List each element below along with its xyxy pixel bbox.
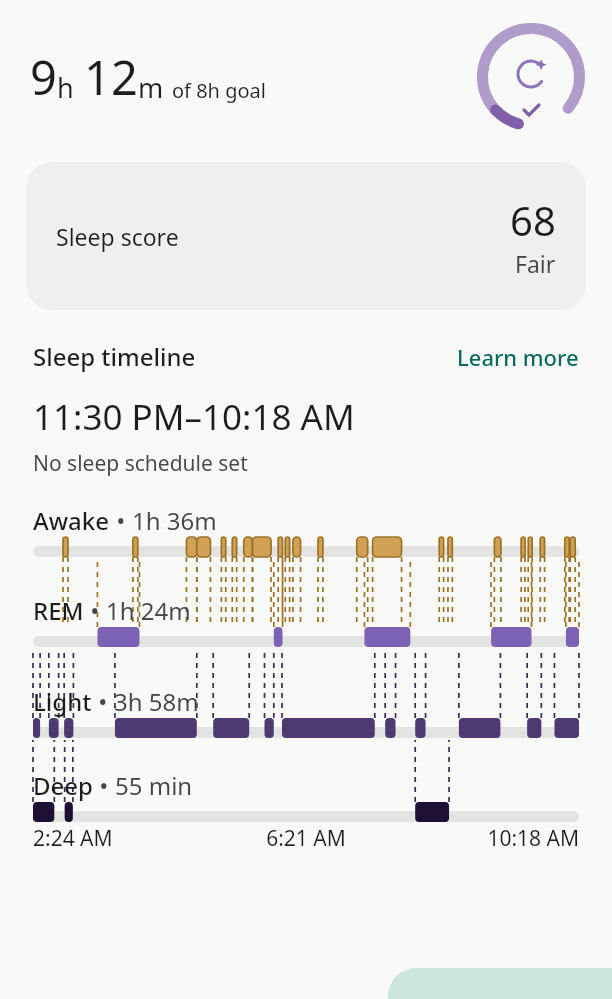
button[interactable]: Learn more: [457, 342, 579, 372]
staticText: 3h 58m: [114, 685, 199, 718]
staticText: Learn more: [457, 342, 579, 372]
staticText: h: [57, 69, 74, 106]
staticText: 1h 24m: [106, 594, 191, 627]
staticText: No sleep schedule set: [33, 449, 248, 478]
staticText: Deep: [33, 769, 93, 802]
staticText: Awake: [33, 504, 110, 537]
staticText: 6:21 AM: [215, 824, 397, 853]
staticText: Sleep timeline: [33, 340, 457, 373]
staticText: Sleep score: [56, 221, 179, 252]
staticText: 1h 36m: [132, 504, 217, 537]
button[interactable]: [388, 968, 612, 999]
staticText: Fair: [515, 248, 556, 279]
staticText: 11:30 PM–10:18 AM: [33, 393, 355, 441]
staticText: 2:24 AM: [33, 824, 215, 853]
staticText: of 8h goal: [172, 77, 266, 104]
staticText: REM: [33, 594, 84, 627]
staticText: •: [93, 769, 115, 802]
staticText: •: [92, 685, 114, 718]
staticText: 68: [510, 193, 556, 247]
button[interactable]: Sleep goal progress: [474, 20, 588, 134]
staticText: 55 min: [115, 769, 193, 802]
staticText: m: [138, 69, 164, 106]
staticText: •: [84, 594, 106, 627]
button[interactable]: Sleep score: [26, 162, 586, 310]
staticText: Light: [33, 685, 92, 718]
staticText: 10:18 AM: [397, 824, 579, 853]
staticText: •: [110, 504, 132, 537]
staticText: 9: [30, 45, 57, 109]
staticText: 12: [84, 45, 138, 109]
